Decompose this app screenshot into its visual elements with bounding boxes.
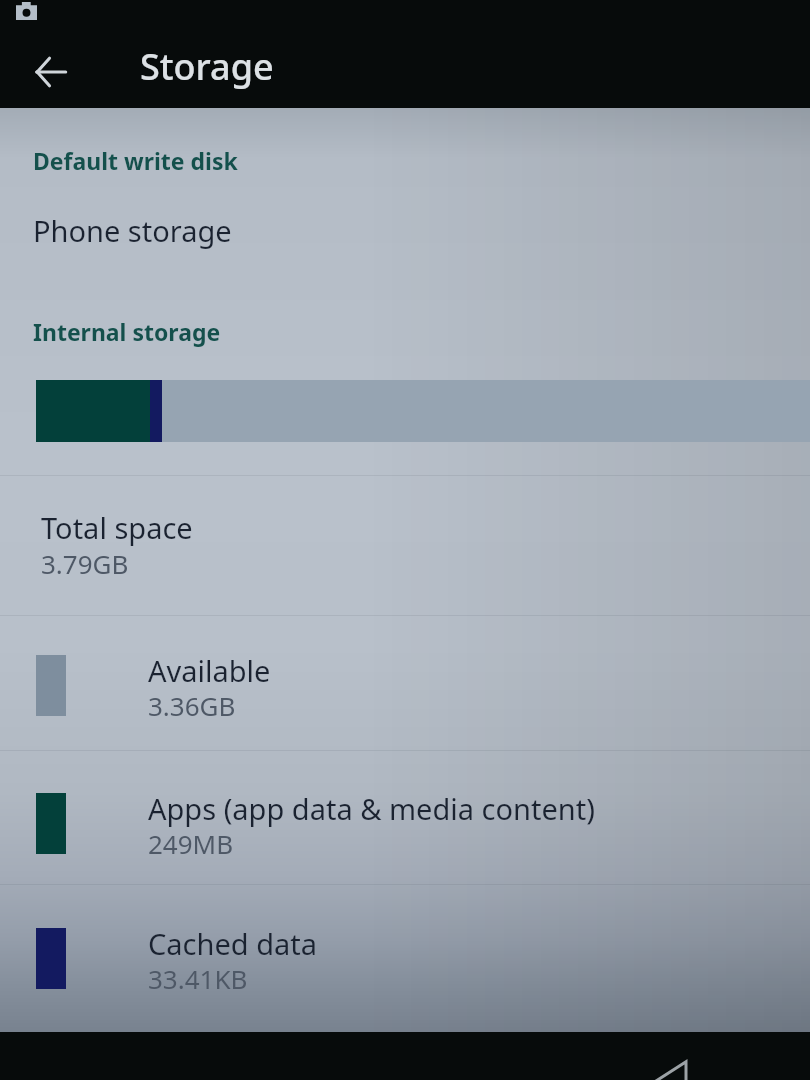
button[interactable]: Available (0, 616, 810, 750)
staticText: Phone storage (33, 211, 232, 250)
button[interactable]: Total space (0, 476, 810, 615)
button[interactable]: Back (620, 1032, 730, 1080)
button[interactable]: Cached data (0, 885, 810, 1030)
button[interactable]: Back (14, 35, 86, 108)
button[interactable]: Apps (app data & media content) (0, 751, 810, 884)
staticText: Cached data (148, 924, 318, 963)
staticText: Available (148, 651, 271, 690)
staticText: Default write disk (33, 145, 238, 176)
staticText: Apps (app data & media content) (148, 789, 595, 828)
staticText: Internal storage (33, 316, 221, 347)
staticText: 33.41KB (148, 961, 248, 996)
staticText: 3.36GB (148, 688, 236, 723)
staticText: 249MB (148, 826, 234, 861)
staticText: Total space (41, 508, 193, 547)
staticText: Storage (140, 42, 274, 91)
staticText: 3.79GB (41, 546, 129, 581)
